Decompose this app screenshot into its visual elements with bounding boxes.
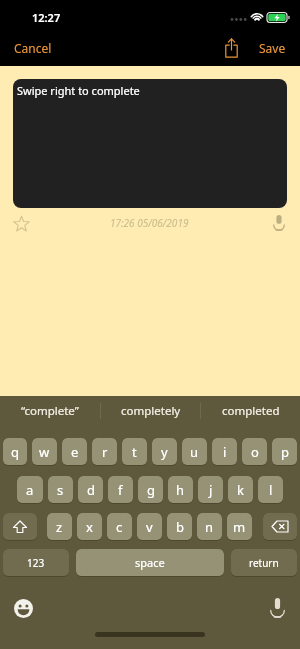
staticText: 123 [27,556,45,570]
staticText: k [237,481,244,499]
staticText: d [87,481,95,499]
button[interactable]: e [62,438,87,465]
button[interactable]: m [227,513,252,540]
staticText: x [86,518,93,536]
staticText: y [161,443,168,461]
staticText: p [281,443,289,461]
button[interactable]: u [182,438,207,465]
staticText: v [146,518,153,536]
button[interactable]: completed [201,396,300,426]
button[interactable]: d [78,476,103,503]
button[interactable]: l [258,476,283,503]
button[interactable]: a [17,476,43,503]
button[interactable]: y [152,438,177,465]
button[interactable]: n [197,513,222,540]
button[interactable]: s [48,476,73,503]
staticText: e [71,443,79,461]
button[interactable]: p [272,438,297,465]
staticText: l [269,481,273,499]
button[interactable]: t [122,438,147,465]
button[interactable]: c [107,513,132,540]
staticText: Save [259,40,286,56]
staticText: h [176,481,185,499]
button[interactable]: i [212,438,237,465]
staticText: Swipe right to complete [17,83,140,98]
button[interactable]: v [137,513,162,540]
staticText: “complete” [21,403,79,419]
staticText: Cancel [14,40,52,56]
staticText: w [39,443,50,461]
button[interactable] [267,598,287,618]
button[interactable]: Cancel [14,40,52,56]
button[interactable] [269,213,289,233]
staticText: space [135,555,165,570]
button[interactable] [216,36,246,60]
button[interactable]: z [47,513,72,540]
button[interactable] [3,513,37,540]
staticText: f [118,481,123,499]
button[interactable] [11,213,31,233]
staticText: c [116,518,123,536]
button[interactable]: j [198,476,223,503]
button[interactable]: Swipe right to complete [13,79,287,208]
button[interactable]: completely [101,396,200,426]
staticText: i [223,443,227,461]
button[interactable]: o [242,438,267,465]
button[interactable]: return [231,549,297,576]
button[interactable]: k [228,476,253,503]
button[interactable]: b [167,513,192,540]
button[interactable]: q [3,438,27,465]
staticText: z [56,518,63,536]
staticText: u [190,443,199,461]
staticText: 17:26 05/06/2019 [110,216,189,230]
staticText: o [251,443,259,461]
button[interactable]: “complete” [0,396,100,426]
staticText: q [11,443,19,461]
button[interactable]: 123 [3,549,69,576]
staticText: m [233,518,246,536]
staticText: s [57,481,64,499]
staticText: completed [222,403,280,419]
button[interactable]: w [32,438,57,465]
button[interactable]: space [76,549,224,576]
button[interactable]: g [138,476,163,503]
button[interactable]: x [77,513,102,540]
staticText: return [249,556,279,570]
button[interactable]: r [92,438,117,465]
button[interactable] [13,598,33,618]
button[interactable] [263,513,297,540]
staticText: 12:27 [32,10,61,25]
staticText: j [209,481,213,499]
staticText: b [176,518,184,536]
button[interactable]: f [108,476,133,503]
staticText: a [26,481,34,499]
button[interactable]: Save [259,40,286,56]
staticText: n [205,518,214,536]
button[interactable]: h [168,476,193,503]
staticText: completely [121,403,181,419]
staticText: g [147,481,155,499]
staticText: r [102,443,108,461]
staticText: t [132,443,137,461]
